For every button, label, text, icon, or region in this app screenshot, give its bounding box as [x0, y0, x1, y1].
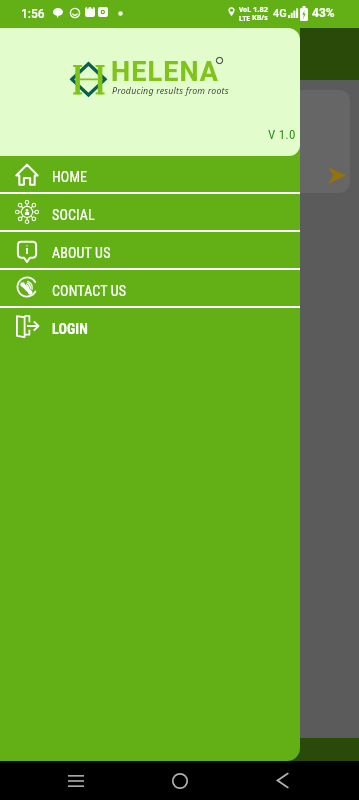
staticText: V 1.0 — [268, 127, 296, 142]
button[interactable]: LOGIN — [0, 308, 300, 344]
staticText: KB/s — [252, 13, 268, 23]
staticText: 1.82 — [253, 4, 268, 14]
staticText: 1:56 — [21, 7, 45, 21]
staticText: LTE — [239, 14, 250, 23]
button[interactable]: Home — [160, 761, 200, 800]
staticText: Producing results from roots — [112, 85, 229, 97]
staticText: 43% — [312, 6, 335, 20]
button[interactable]: CONTACT US — [0, 270, 300, 306]
button[interactable]: HOME — [0, 156, 300, 192]
staticText: ABOUT US — [52, 245, 111, 261]
button[interactable]: SOCIAL — [0, 194, 300, 230]
staticText: LOGIN — [52, 321, 89, 337]
staticText: 4G — [273, 7, 287, 20]
button[interactable]: ABOUT US — [0, 232, 300, 268]
staticText: CONTACT US — [52, 283, 127, 299]
button[interactable]: Back — [262, 761, 302, 800]
staticText: SOCIAL — [52, 207, 95, 223]
button[interactable]: Recent apps — [56, 761, 96, 800]
staticText: HOME — [52, 169, 88, 185]
staticText: VoL — [239, 5, 251, 14]
staticText: HELENA — [111, 56, 220, 88]
